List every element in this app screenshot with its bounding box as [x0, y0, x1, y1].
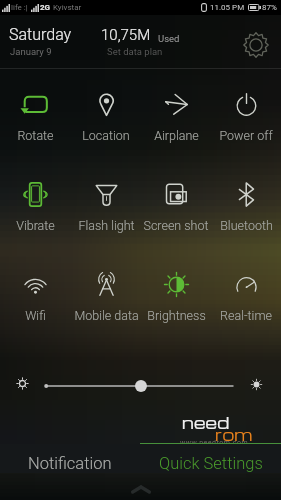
button[interactable]: Dim brightness	[16, 377, 29, 390]
button[interactable]: Airplane	[141, 69, 211, 159]
button[interactable]: Mobile data	[71, 249, 141, 339]
button[interactable]: Settings	[240, 29, 272, 61]
staticText: Brightness	[147, 308, 206, 323]
staticText: life :|	[11, 3, 28, 12]
staticText: 11.05 PM	[210, 3, 245, 12]
staticText: Set data plan	[107, 46, 163, 57]
staticText: rom	[215, 424, 253, 445]
button[interactable]: Bluetooth	[211, 159, 281, 249]
staticText: Location	[82, 128, 130, 143]
button[interactable]: Wifi	[0, 249, 71, 339]
staticText: Kyivstar	[53, 3, 82, 12]
staticText: Real-time	[220, 308, 272, 323]
staticText: Vibrate	[16, 218, 55, 233]
button[interactable]: Notification	[0, 449, 140, 478]
staticText: 87%	[262, 3, 277, 12]
button[interactable]: Expand panel	[128, 484, 154, 494]
staticText: January 9	[10, 46, 52, 57]
staticText: www.needrom.com	[180, 439, 249, 447]
staticText: Screen shot	[143, 218, 209, 233]
staticText: need	[182, 412, 230, 433]
staticText: Power off	[219, 128, 273, 143]
button[interactable]: Location	[71, 69, 141, 159]
button[interactable]: Quick Settings	[140, 449, 281, 478]
button[interactable]: Real-time	[211, 249, 281, 339]
button[interactable]: Flash light	[71, 159, 141, 249]
staticText: Mobile data	[74, 308, 139, 323]
button[interactable]: Rotate	[0, 69, 71, 159]
button[interactable]: Increase brightness	[251, 379, 262, 390]
staticText: Quick Settings	[159, 454, 263, 473]
staticText: Flash light	[78, 218, 135, 233]
button[interactable]	[40, 377, 242, 393]
staticText: 2G	[40, 3, 51, 12]
staticText: Notification	[28, 454, 112, 473]
staticText: Airplane	[154, 128, 199, 143]
button[interactable]: Brightness	[141, 249, 211, 339]
staticText: 10,75M	[101, 26, 151, 44]
staticText: Wifi	[25, 308, 46, 323]
button[interactable]: Vibrate	[0, 159, 71, 249]
button[interactable]: Screen shot	[141, 159, 211, 249]
staticText: Used	[158, 33, 180, 44]
button[interactable]: Power off	[211, 69, 281, 159]
staticText: Saturday	[9, 25, 72, 44]
staticText: Rotate	[17, 128, 54, 143]
staticText: Bluetooth	[220, 218, 273, 233]
